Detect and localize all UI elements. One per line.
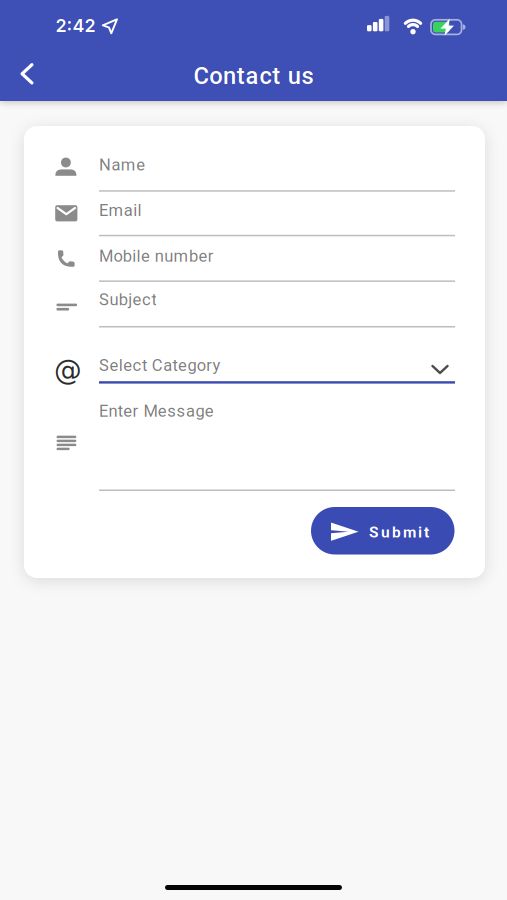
button[interactable] [5, 52, 49, 96]
staticText: S u b m i t [369, 523, 429, 541]
staticText: @ [54, 354, 82, 386]
button[interactable]: Select Category [99, 355, 455, 384]
staticText: Subject [99, 290, 156, 309]
button[interactable]: S u b m i t [311, 507, 454, 554]
staticText: Email [99, 201, 142, 220]
staticText: Contact us [193, 62, 314, 90]
staticText: Enter Message [99, 401, 214, 421]
staticText: Name [99, 155, 145, 175]
staticText: Mobile number [99, 246, 214, 266]
staticText: 2:42 [55, 15, 95, 36]
staticText: Select Category [99, 356, 221, 375]
